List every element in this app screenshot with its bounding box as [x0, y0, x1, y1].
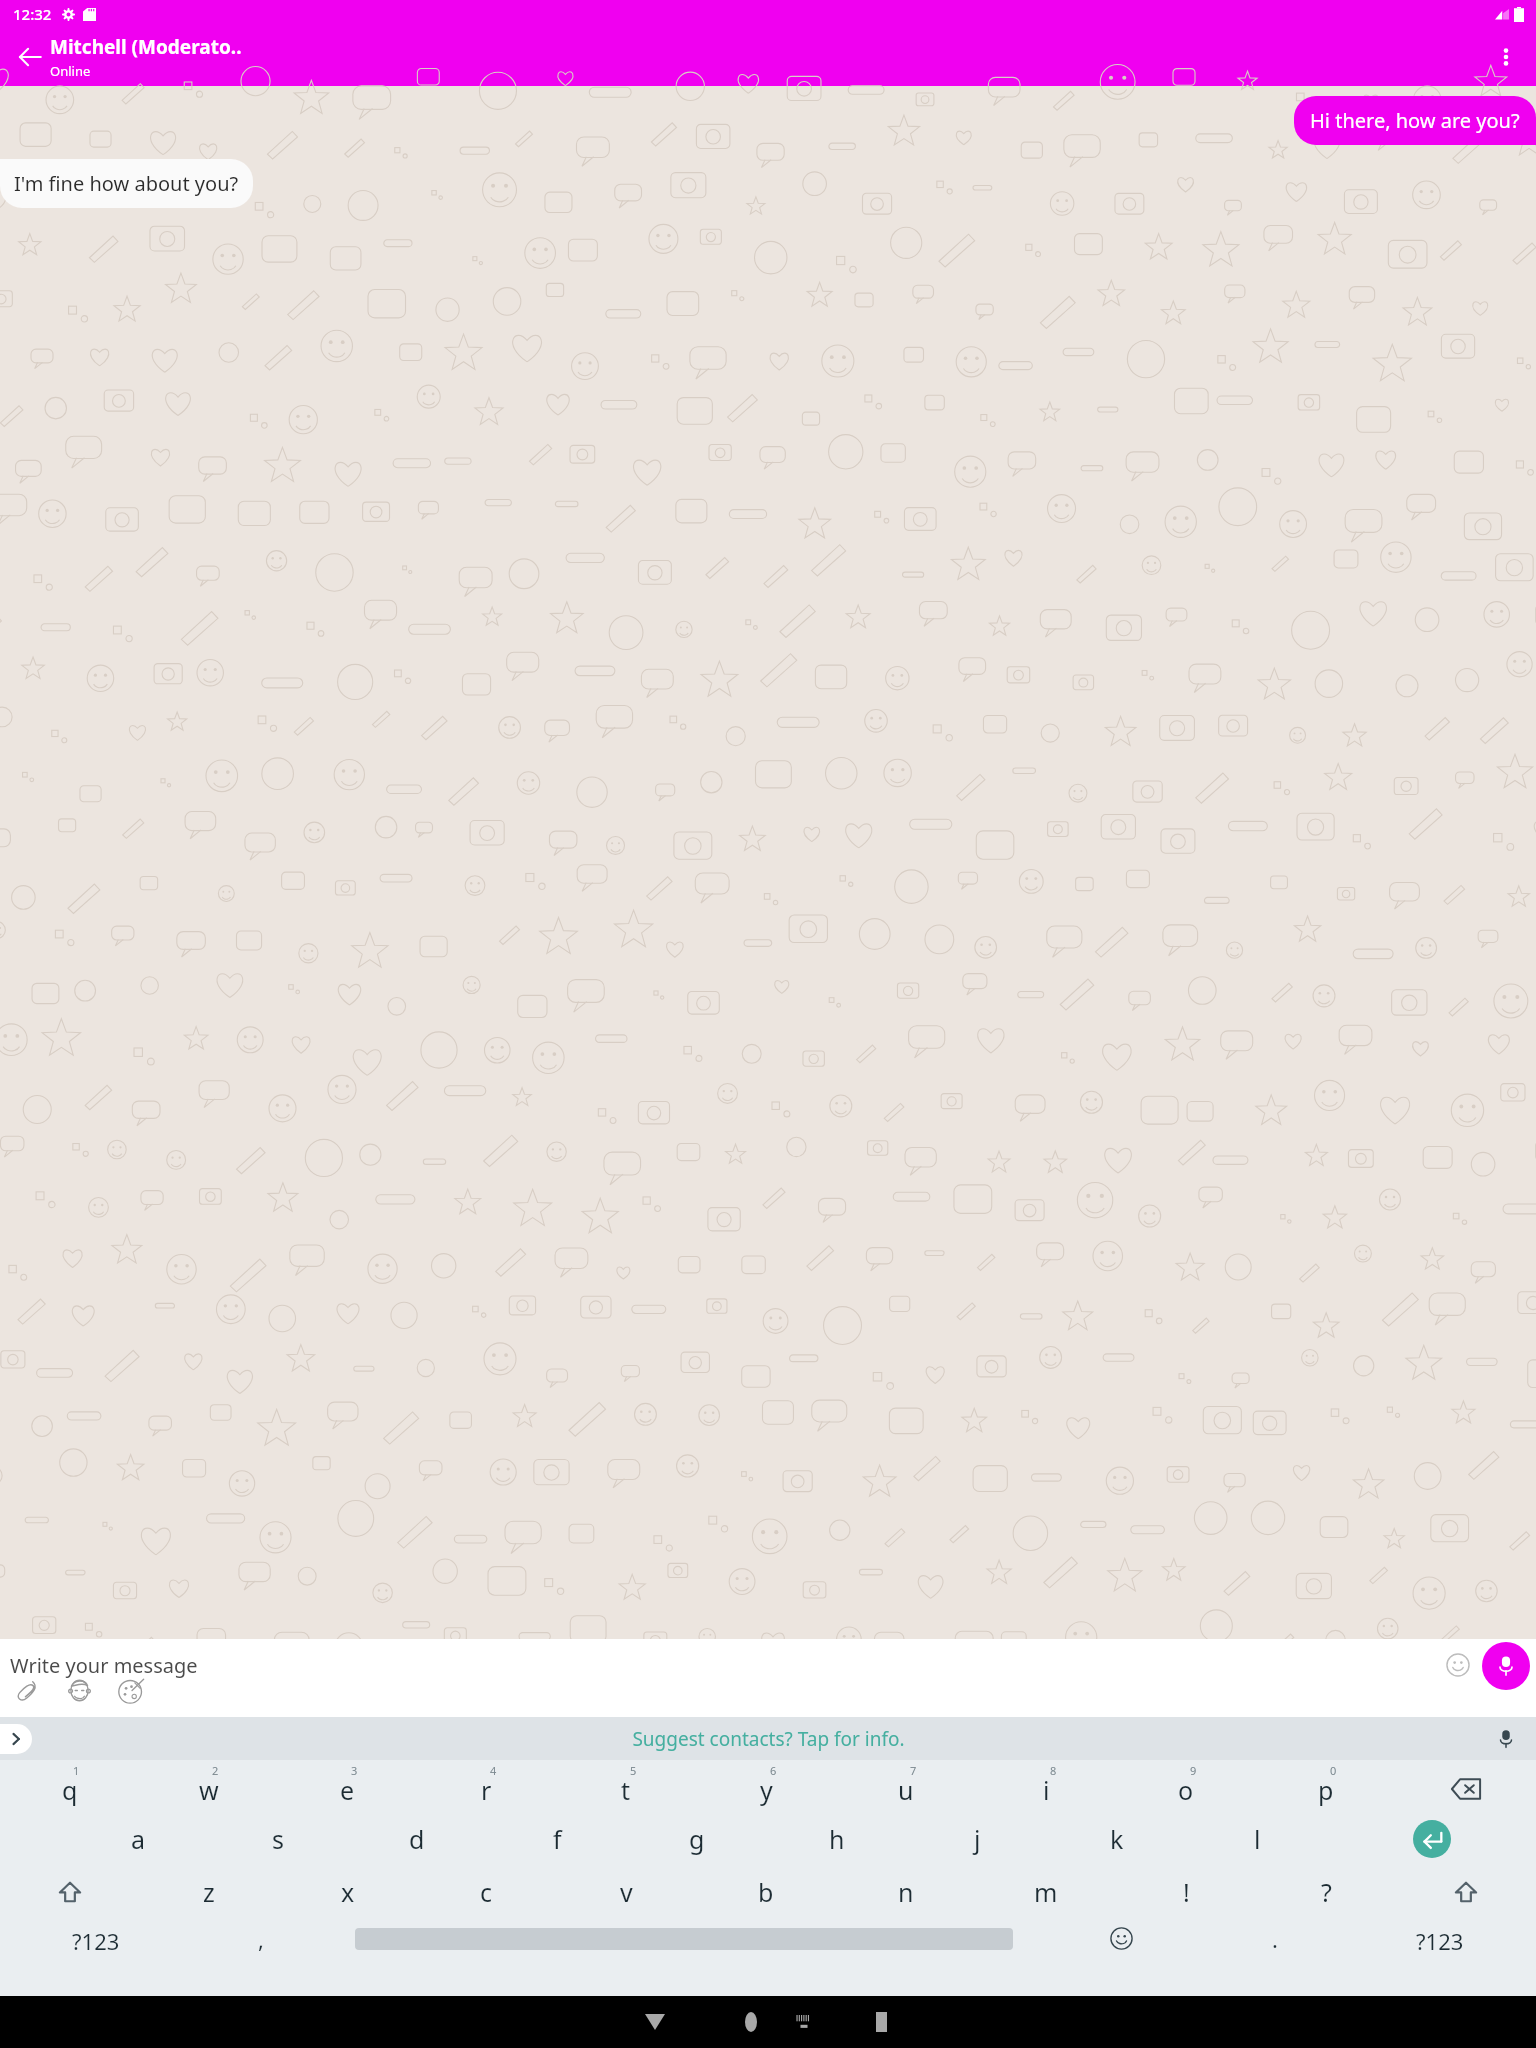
button[interactable]: ?	[1256, 1865, 1396, 1918]
staticText: v	[620, 1875, 633, 1909]
staticText: 1	[73, 1763, 80, 1778]
staticText: j	[974, 1822, 981, 1856]
staticText: I'm fine how about you?	[14, 170, 239, 197]
button[interactable]: z	[139, 1865, 278, 1918]
button[interactable]: m	[976, 1865, 1116, 1918]
button[interactable]: 7	[836, 1760, 976, 1813]
button[interactable]: !	[1116, 1865, 1256, 1918]
staticText: 5	[630, 1763, 637, 1778]
staticText: 9	[1190, 1763, 1197, 1778]
staticText: i	[1043, 1773, 1050, 1807]
button[interactable]: k	[1047, 1813, 1187, 1865]
button[interactable]: Draw	[110, 1669, 152, 1711]
button[interactable]: x	[278, 1865, 417, 1918]
staticText: 7	[910, 1763, 917, 1778]
button[interactable]: c	[417, 1865, 556, 1918]
staticText: ,	[258, 1924, 264, 1954]
button[interactable]: v	[556, 1865, 696, 1918]
staticText: l	[1254, 1822, 1261, 1856]
button[interactable]: 2	[139, 1760, 278, 1813]
button[interactable]: ?123	[1344, 1918, 1536, 1996]
staticText: b	[758, 1875, 774, 1909]
staticText: g	[689, 1822, 705, 1856]
button[interactable]: 6	[696, 1760, 836, 1813]
staticText: z	[203, 1875, 215, 1909]
button[interactable]: Stickers	[58, 1669, 100, 1711]
button[interactable]: Hi there, how are you?	[1294, 96, 1536, 145]
button[interactable]: 9	[1116, 1760, 1256, 1813]
staticText: n	[898, 1875, 914, 1909]
staticText: q	[62, 1773, 78, 1807]
button[interactable]: 5	[556, 1760, 696, 1813]
button[interactable]: h	[767, 1813, 907, 1865]
staticText: r	[481, 1773, 492, 1807]
button[interactable]: Suggest contacts? Tap for info.	[632, 1726, 905, 1752]
button[interactable]: More options	[1484, 35, 1528, 79]
staticText: ?	[1321, 1875, 1332, 1909]
button[interactable]: Shift	[1396, 1865, 1536, 1918]
staticText: .	[1272, 1924, 1278, 1954]
button[interactable]: ?123	[0, 1918, 192, 1996]
staticText: s	[272, 1822, 284, 1856]
button[interactable]: Voice message	[1482, 1642, 1530, 1690]
staticText: Online	[50, 62, 91, 80]
staticText: 4	[490, 1763, 497, 1778]
staticText: 12:32	[13, 4, 52, 24]
button[interactable]: Emoji	[1438, 1645, 1478, 1685]
button[interactable]: Voice input	[1488, 1721, 1524, 1757]
button[interactable]: Shift	[0, 1865, 139, 1918]
staticText: Hi there, how are you?	[1310, 107, 1520, 134]
staticText: 2	[212, 1763, 219, 1778]
button[interactable]: Recents	[853, 1996, 909, 2048]
button[interactable]: Attach file	[6, 1669, 48, 1711]
button[interactable]: 4	[417, 1760, 556, 1813]
button[interactable]: l	[1187, 1813, 1327, 1865]
staticText: 6	[770, 1763, 777, 1778]
button[interactable]: Backspace	[1396, 1760, 1536, 1813]
button[interactable]: Keyboard	[779, 1997, 829, 2047]
button[interactable]: f	[487, 1813, 627, 1865]
staticText: Mitchell (Moderato..	[50, 34, 242, 60]
button[interactable]: Back	[8, 35, 52, 79]
button[interactable]: .	[1206, 1918, 1344, 1996]
button[interactable]: a	[69, 1813, 208, 1865]
staticText: m	[1034, 1875, 1058, 1909]
staticText: h	[829, 1822, 845, 1856]
staticText: ?123	[72, 1926, 120, 1956]
button[interactable]: s	[208, 1813, 347, 1865]
staticText: y	[760, 1773, 773, 1807]
staticText: f	[553, 1822, 562, 1856]
button[interactable]: Home	[723, 1996, 779, 2048]
button[interactable]: ,	[192, 1918, 330, 1996]
button[interactable]: Emoji	[1037, 1918, 1206, 1996]
staticText: t	[621, 1773, 631, 1807]
button[interactable]: 0	[1256, 1760, 1396, 1813]
staticText: Write your message	[10, 1652, 198, 1679]
staticText: 0	[1330, 1763, 1337, 1778]
button[interactable]: Mitchell (Moderato..	[50, 34, 242, 80]
button[interactable]: Expand suggestions	[0, 1724, 32, 1754]
button[interactable]: j	[907, 1813, 1047, 1865]
button[interactable]: Space	[330, 1918, 1037, 1996]
button[interactable]: n	[836, 1865, 976, 1918]
button[interactable]: 3	[278, 1760, 417, 1813]
staticText: !	[1183, 1875, 1190, 1909]
staticText: k	[1110, 1822, 1124, 1856]
staticText: ?123	[1416, 1926, 1464, 1956]
button[interactable]: g	[627, 1813, 767, 1865]
staticText: o	[1178, 1773, 1194, 1807]
button[interactable]: Back	[627, 1996, 683, 2048]
button[interactable]: 1	[0, 1760, 139, 1813]
staticText: 3	[351, 1763, 358, 1778]
staticText: c	[480, 1875, 493, 1909]
staticText: d	[409, 1822, 425, 1856]
button[interactable]: Enter	[1327, 1813, 1536, 1865]
staticText: w	[199, 1773, 219, 1807]
button[interactable]: 8	[976, 1760, 1116, 1813]
staticText: a	[131, 1822, 146, 1856]
staticText: p	[1318, 1773, 1334, 1807]
button[interactable]: d	[347, 1813, 487, 1865]
staticText: 8	[1050, 1763, 1057, 1778]
button[interactable]: b	[696, 1865, 836, 1918]
button[interactable]: I'm fine how about you?	[0, 159, 253, 208]
